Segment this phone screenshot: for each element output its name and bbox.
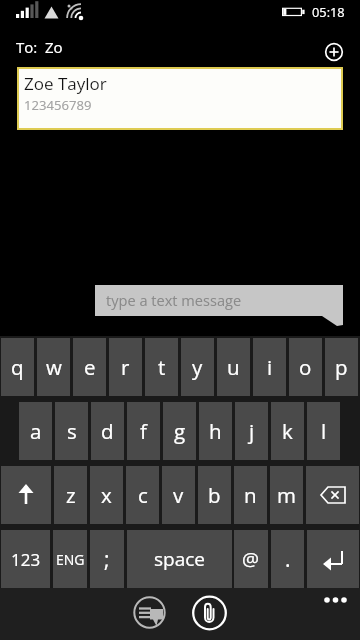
button[interactable]: 123 [1,530,50,588]
button[interactable]: space [127,530,232,588]
staticText: To: Zo [16,37,63,57]
staticText: g [174,417,186,445]
staticText: b [208,481,221,509]
button[interactable]: Shift [1,466,51,524]
staticText: r [121,353,130,381]
button[interactable]: e [73,338,106,396]
button[interactable]: q [1,338,34,396]
staticText: q [11,353,24,381]
button[interactable]: b [198,466,231,524]
staticText: 123456789 [24,96,92,114]
button[interactable]: s [55,402,88,460]
button[interactable]: Zoe Taylor [17,67,343,130]
button[interactable]: f [127,402,160,460]
staticText: 123 [11,548,41,571]
staticText: c [138,481,148,509]
button[interactable]: k [271,402,304,460]
button[interactable]: o [289,338,322,396]
staticText: f [140,417,147,445]
staticText: p [335,353,348,381]
button[interactable]: l [307,402,340,460]
button[interactable]: Messages [130,593,169,632]
staticText: type a text message [106,290,242,310]
button[interactable]: v [162,466,195,524]
button[interactable]: h [199,402,232,460]
staticText: e [84,353,96,381]
staticText: a [30,417,42,445]
staticText: 05:18 [312,3,345,20]
staticText: y [192,353,203,381]
button[interactable]: r [109,338,142,396]
button[interactable]: Enter [307,530,359,588]
staticText: n [244,481,257,509]
button[interactable]: g [163,402,196,460]
button[interactable]: u [217,338,250,396]
staticText: s [67,417,77,445]
staticText: w [46,353,62,381]
staticText: k [282,417,293,445]
staticText: ENG [56,550,85,569]
button[interactable]: z [54,466,87,524]
button[interactable]: n [234,466,267,524]
button[interactable]: p [325,338,358,396]
button[interactable]: t [145,338,178,396]
button[interactable]: ENG [53,530,87,588]
button[interactable]: type a text message [95,285,343,327]
staticText: Zoe Taylor [24,72,107,95]
button[interactable]: y [181,338,214,396]
staticText: j [249,417,255,445]
staticText: @ [242,546,260,572]
button[interactable]: i [253,338,286,396]
staticText: h [209,417,222,445]
button[interactable]: j [235,402,268,460]
button[interactable]: m [270,466,303,524]
staticText: o [299,353,312,381]
button[interactable]: a [19,402,52,460]
button[interactable]: . [271,530,304,588]
staticText: v [173,481,184,509]
staticText: . [285,545,291,574]
button[interactable]: @ [234,530,268,588]
button[interactable]: d [91,402,124,460]
button[interactable]: Backspace [306,466,359,524]
staticText: l [321,417,327,445]
button[interactable]: Attach [190,593,229,632]
staticText: z [66,481,76,509]
staticText: u [227,353,240,381]
staticText: i [267,353,273,381]
staticText: space [154,546,206,572]
staticText: d [101,417,114,445]
staticText: t [158,353,166,381]
button[interactable]: More [316,588,358,630]
button[interactable]: x [90,466,123,524]
button[interactable]: ; [90,530,124,588]
button[interactable]: Add recipient [322,40,346,64]
staticText: ; [104,545,110,574]
button[interactable]: c [126,466,159,524]
staticText: m [277,481,296,509]
button[interactable]: w [37,338,70,396]
staticText: x [101,481,112,509]
